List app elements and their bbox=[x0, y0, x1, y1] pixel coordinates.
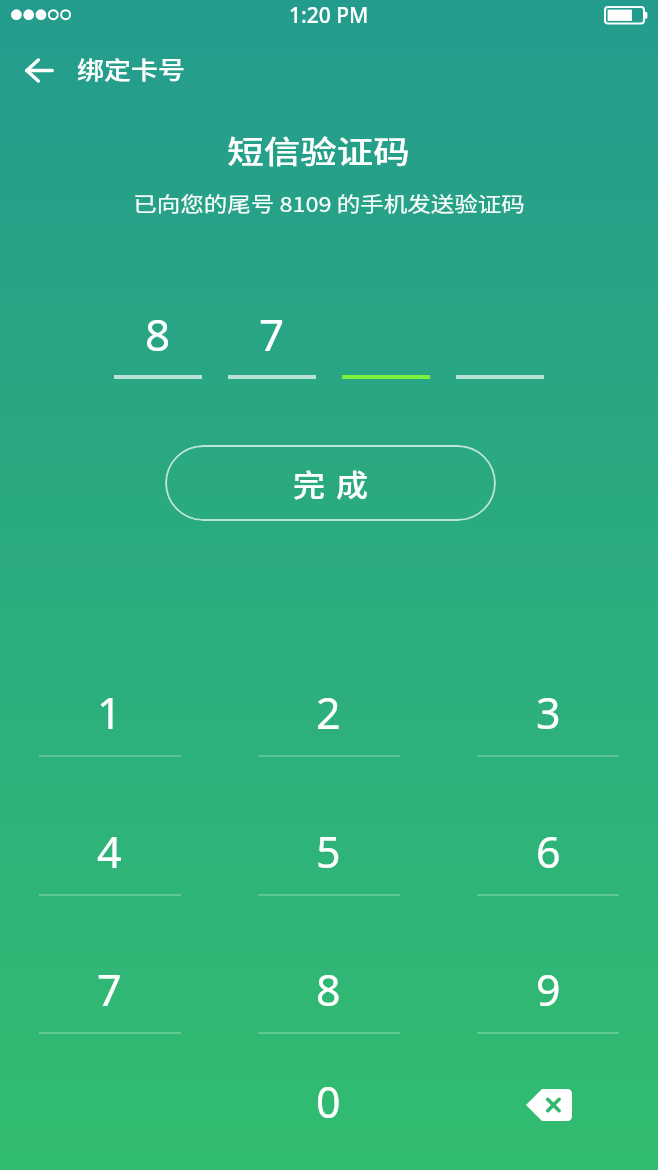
button[interactable]: 4 bbox=[0, 778, 219, 917]
button[interactable]: 6 bbox=[439, 778, 658, 917]
button[interactable]: 8 bbox=[114, 300, 202, 385]
button[interactable]: 完 bbox=[165, 445, 496, 521]
staticText: 已向您的尾号 8109 的手机发送验证码 bbox=[133, 188, 525, 218]
staticText: 8 bbox=[145, 304, 171, 364]
button[interactable]: Back bbox=[10, 41, 68, 99]
button[interactable]: 3 bbox=[439, 639, 658, 778]
button[interactable]: 7 bbox=[228, 300, 316, 385]
staticText: 8 bbox=[316, 960, 341, 1019]
staticText: 6 bbox=[536, 822, 561, 881]
staticText: 完 bbox=[293, 462, 326, 504]
button[interactable]: 1 bbox=[0, 639, 219, 778]
staticText: 3 bbox=[536, 683, 561, 742]
staticText: 7 bbox=[97, 960, 122, 1019]
staticText: 绑定卡号 bbox=[77, 51, 185, 86]
staticText: 5 bbox=[316, 822, 341, 881]
button[interactable] bbox=[342, 300, 430, 385]
button[interactable]: 2 bbox=[219, 639, 438, 778]
staticText: 4 bbox=[97, 822, 122, 881]
button[interactable]: 7 bbox=[0, 916, 219, 1055]
button[interactable]: Delete bbox=[439, 1055, 658, 1170]
button[interactable] bbox=[456, 300, 544, 385]
staticText: 7 bbox=[259, 304, 285, 364]
staticText: 短信验证码 bbox=[227, 128, 410, 172]
staticText: 2 bbox=[316, 683, 341, 742]
staticText: 0 bbox=[316, 1072, 341, 1131]
button[interactable]: 5 bbox=[219, 778, 438, 917]
staticText: 1 bbox=[97, 683, 122, 742]
button[interactable]: 0 bbox=[219, 1055, 438, 1170]
staticText: 1:20 PM bbox=[289, 1, 369, 30]
staticText: 成 bbox=[336, 462, 369, 504]
staticText: 9 bbox=[536, 960, 561, 1019]
button[interactable]: 9 bbox=[439, 916, 658, 1055]
button[interactable]: 8 bbox=[219, 916, 438, 1055]
